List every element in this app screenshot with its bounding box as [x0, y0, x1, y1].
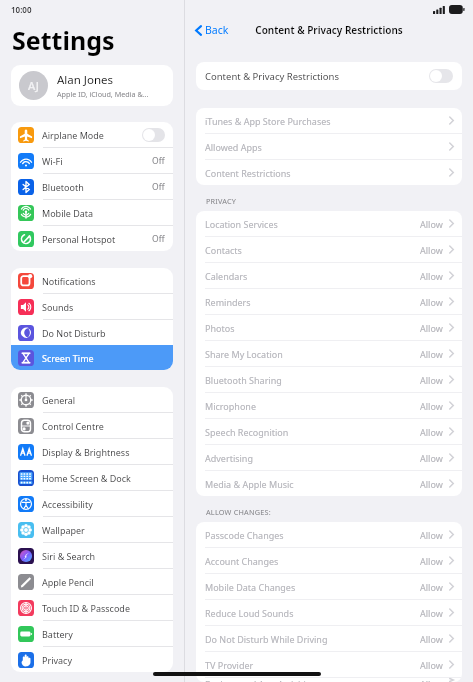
button[interactable]: Apple Pencil: [11, 569, 173, 594]
staticText: Background App Activities: [205, 678, 420, 682]
staticText: Wi-Fi: [42, 155, 152, 167]
staticText: Photos: [205, 322, 420, 334]
staticText: Allow: [420, 348, 443, 360]
button[interactable]: Siri & Search: [11, 543, 173, 568]
button[interactable]: Advertising: [196, 445, 462, 470]
staticText: Allow: [420, 529, 443, 541]
button[interactable]: Do Not Disturb While Driving: [196, 626, 462, 651]
staticText: Speech Recognition: [205, 426, 420, 438]
button[interactable]: Content & Privacy Restrictions: [196, 62, 462, 90]
staticText: Do Not Disturb: [42, 327, 165, 339]
staticText: Mobile Data: [42, 207, 165, 219]
staticText: Allow: [420, 581, 443, 593]
button[interactable]: Mobile Data Changes: [196, 574, 462, 599]
button[interactable]: Mobile Data: [11, 200, 173, 225]
staticText: Reduce Loud Sounds: [205, 607, 420, 619]
staticText: Allow: [420, 374, 443, 386]
button[interactable]: Photos: [196, 315, 462, 340]
staticText: iTunes & App Store Purchases: [205, 115, 449, 127]
staticText: Bluetooth: [42, 181, 152, 193]
staticText: Content & Privacy Restrictions: [255, 23, 403, 37]
staticText: Reminders: [205, 296, 420, 308]
staticText: PRIVACY: [206, 196, 237, 206]
staticText: Account Changes: [205, 555, 420, 567]
staticText: Allow: [420, 555, 443, 567]
button[interactable]: Location Services: [196, 211, 462, 236]
button[interactable]: Airplane Mode: [11, 122, 173, 147]
button[interactable]: AJ: [11, 65, 173, 106]
button[interactable]: Control Centre: [11, 413, 173, 438]
staticText: Allow: [420, 478, 443, 490]
button[interactable]: Calendars: [196, 263, 462, 288]
button[interactable]: General: [11, 387, 173, 412]
button[interactable]: Contacts: [196, 237, 462, 262]
staticText: Personal Hotspot: [42, 233, 152, 245]
button[interactable]: Screen Time: [11, 345, 173, 370]
staticText: Contacts: [205, 244, 420, 256]
staticText: Off: [152, 233, 165, 245]
button[interactable]: Background App Activities: [196, 678, 462, 682]
staticText: Notifications: [42, 275, 165, 287]
button[interactable]: Do Not Disturb: [11, 320, 173, 345]
button[interactable]: Content & Privacy Restrictions toggle: [429, 69, 453, 83]
button[interactable]: Allowed Apps: [196, 134, 462, 159]
button[interactable]: Home Screen & Dock: [11, 465, 173, 490]
button[interactable]: Privacy: [11, 647, 173, 672]
staticText: Allow: [420, 244, 443, 256]
staticText: Allow: [420, 322, 443, 334]
staticText: Mobile Data Changes: [205, 581, 420, 593]
button[interactable]: Notifications: [11, 268, 173, 293]
staticText: Wallpaper: [42, 524, 165, 536]
staticText: Settings: [12, 23, 115, 57]
button[interactable]: iTunes & App Store Purchases: [196, 108, 462, 133]
button[interactable]: Display & Brightness: [11, 439, 173, 464]
button[interactable]: Passcode Changes: [196, 522, 462, 547]
staticText: Share My Location: [205, 348, 420, 360]
button[interactable]: Account Changes: [196, 548, 462, 573]
staticText: Calendars: [205, 270, 420, 282]
button[interactable]: Microphone: [196, 393, 462, 418]
button[interactable]: Bluetooth: [11, 174, 173, 199]
staticText: Off: [152, 181, 165, 193]
button[interactable]: TV Provider: [196, 652, 462, 677]
staticText: Microphone: [205, 400, 420, 412]
staticText: Content & Privacy Restrictions: [205, 70, 429, 83]
button[interactable]: Wallpaper: [11, 517, 173, 542]
button[interactable]: Touch ID & Passcode: [11, 595, 173, 620]
staticText: Privacy: [42, 654, 165, 666]
staticText: Apple Pencil: [42, 576, 165, 588]
staticText: Allow: [420, 452, 443, 464]
staticText: 10:00: [11, 4, 32, 15]
staticText: Allow: [420, 270, 443, 282]
button[interactable]: Content Restrictions: [196, 160, 462, 185]
button[interactable]: Accessibility: [11, 491, 173, 516]
button[interactable]: Speech Recognition: [196, 419, 462, 444]
button[interactable]: Battery: [11, 621, 173, 646]
button[interactable]: Back: [193, 21, 231, 39]
staticText: Passcode Changes: [205, 529, 420, 541]
staticText: Alan Jones: [57, 72, 114, 88]
staticText: TV Provider: [205, 659, 420, 671]
button[interactable]: Reduce Loud Sounds: [196, 600, 462, 625]
staticText: Location Services: [205, 218, 420, 230]
staticText: Content Restrictions: [205, 167, 449, 179]
staticText: AJ: [28, 78, 39, 93]
staticText: Apple ID, iCloud, Media &…: [57, 89, 149, 99]
staticText: Allow: [420, 607, 443, 619]
staticText: Screen Time: [42, 352, 165, 364]
staticText: Allow: [420, 426, 443, 438]
button[interactable]: Bluetooth Sharing: [196, 367, 462, 392]
button[interactable]: Airplane Mode toggle: [142, 128, 165, 142]
button[interactable]: Personal Hotspot: [11, 226, 173, 251]
staticText: Touch ID & Passcode: [42, 602, 165, 614]
button[interactable]: Share My Location: [196, 341, 462, 366]
staticText: Do Not Disturb While Driving: [205, 633, 420, 645]
staticText: Control Centre: [42, 420, 165, 432]
button[interactable]: Media & Apple Music: [196, 471, 462, 496]
staticText: Back: [205, 23, 229, 37]
staticText: Allow: [420, 400, 443, 412]
staticText: Battery: [42, 628, 165, 640]
button[interactable]: Sounds: [11, 294, 173, 319]
button[interactable]: Wi-Fi: [11, 148, 173, 173]
button[interactable]: Reminders: [196, 289, 462, 314]
